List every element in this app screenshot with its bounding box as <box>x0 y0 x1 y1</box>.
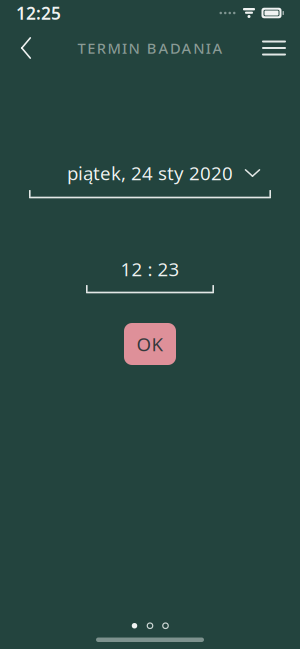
button[interactable]: Menu <box>252 26 296 70</box>
button[interactable]: Back <box>4 26 48 70</box>
button[interactable]: 12 <box>86 259 214 292</box>
staticText: piątek, 24 sty 2020 <box>67 161 233 185</box>
button[interactable]: OK <box>124 323 176 365</box>
staticText: TERMIN BADANIA <box>78 38 222 58</box>
button[interactable]: piątek, 24 sty 2020 <box>29 162 271 197</box>
staticText: 12:25 <box>16 1 61 24</box>
staticText: 23 <box>157 257 179 281</box>
staticText: : <box>147 257 152 281</box>
staticText: OK <box>136 332 163 356</box>
staticText: 12 <box>120 257 142 281</box>
